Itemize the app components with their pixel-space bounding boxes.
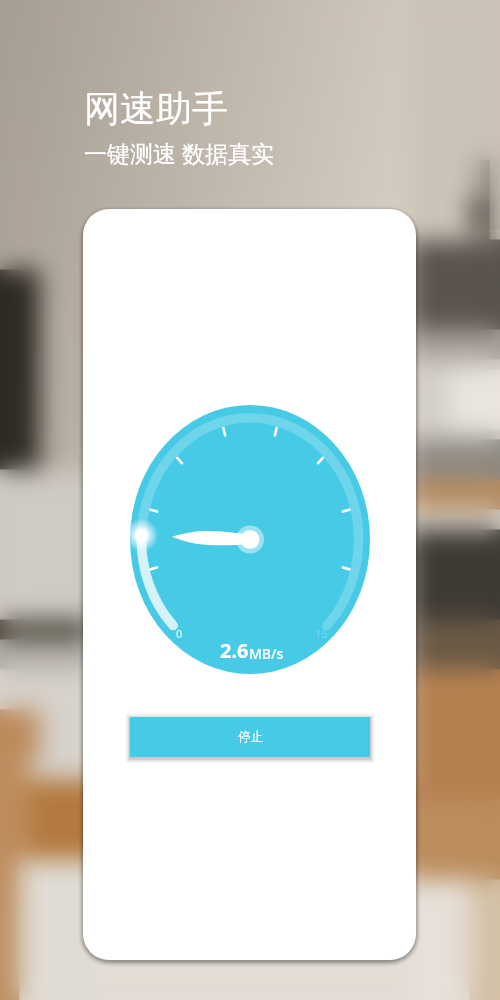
- staticText: 2.6: [220, 637, 249, 664]
- button[interactable]: 停止: [130, 717, 370, 757]
- staticText: MB/s: [249, 644, 284, 663]
- staticText: 0: [176, 626, 183, 641]
- staticText: 网速助手: [84, 86, 228, 131]
- staticText: 15: [315, 626, 328, 641]
- staticText: 一键测速 数据真实: [84, 137, 274, 168]
- staticText: 停止: [238, 729, 263, 745]
